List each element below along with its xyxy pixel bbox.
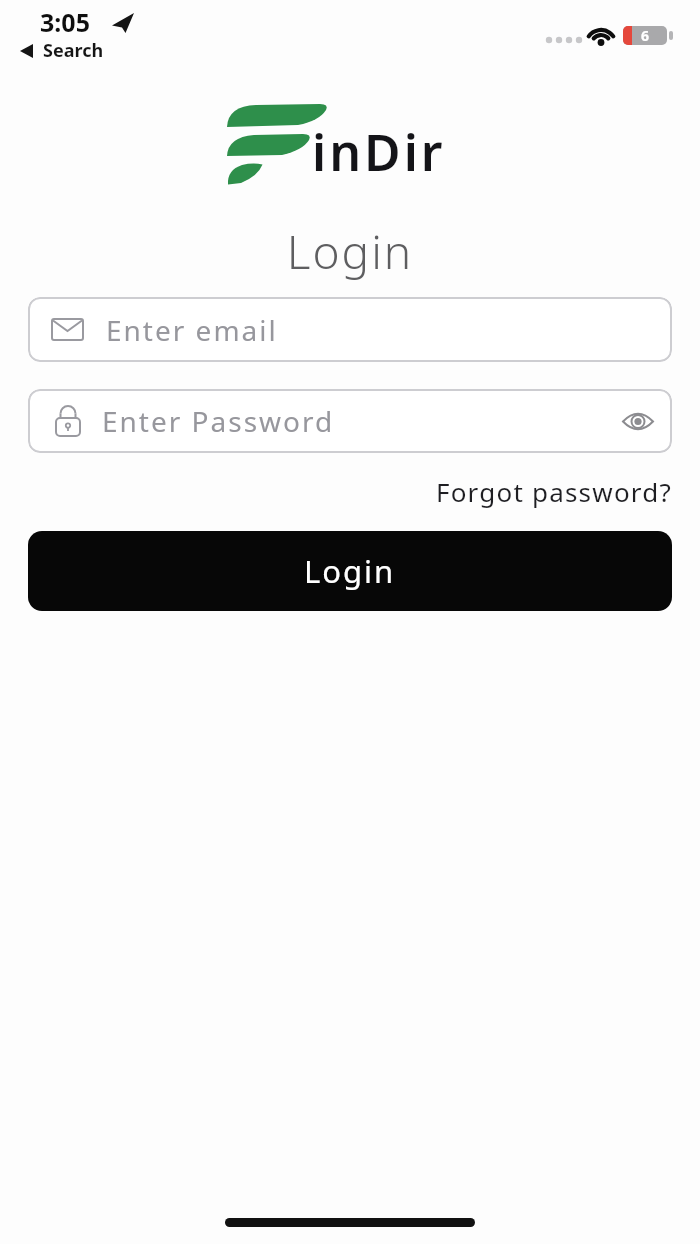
button[interactable]: Forgot password? [436,474,672,509]
staticText: Enter email [106,311,278,349]
button[interactable]: Enter Password [28,389,672,453]
button[interactable]: Login [28,531,672,611]
staticText: Search [43,38,104,63]
staticText: 3:05 [40,5,90,39]
staticText: Login [304,550,396,592]
staticText: Enter Password [102,402,335,440]
button[interactable]: Enter email [28,297,672,362]
staticText: Login [0,220,700,283]
staticText: 6 [641,26,650,45]
button[interactable]: Search [20,38,104,63]
staticText: inDir [312,118,446,186]
